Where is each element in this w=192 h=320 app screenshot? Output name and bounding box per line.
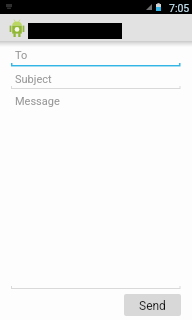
button[interactable]: To — [0, 47, 192, 66]
button[interactable]: App icon — [9, 19, 25, 39]
button[interactable]: Send — [124, 294, 181, 316]
staticText: Message — [15, 95, 60, 108]
staticText: To — [15, 49, 28, 62]
staticText: 7:05 — [169, 2, 190, 14]
staticText: Send — [139, 299, 166, 313]
button[interactable]: Subject — [0, 68, 192, 89]
staticText: Subject — [15, 73, 52, 86]
button[interactable]: Message — [0, 91, 192, 289]
